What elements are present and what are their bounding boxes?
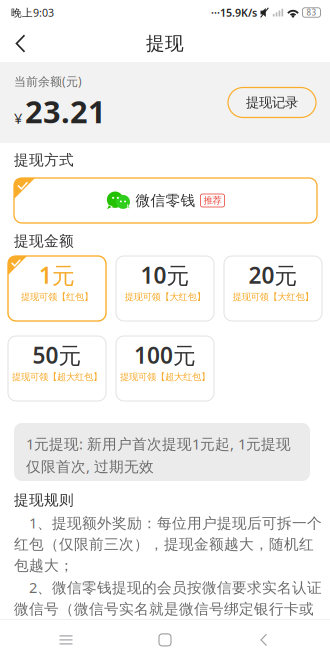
staticText: 微信零钱	[135, 191, 195, 209]
staticText: 推荐	[203, 195, 221, 206]
staticText: 提现金额	[14, 232, 74, 250]
button[interactable]: 1元	[8, 256, 106, 321]
staticText: 50元	[32, 340, 81, 370]
staticText: 1、提现额外奖励：每位用户提现后可拆一个红包（仅限前三次），提现金额越大，随机红…	[14, 513, 322, 574]
staticText: 1元提现: 新用户首次提现1元起, 1元提现仅限首次, 过期无效	[26, 434, 291, 476]
staticText: 10元	[140, 260, 189, 290]
staticText: 晚上9:03	[11, 5, 54, 20]
staticText: 提现方式	[14, 151, 74, 169]
button[interactable]: Home	[132, 620, 198, 660]
button[interactable]: Recent apps	[33, 620, 99, 660]
staticText: 提现可领【大红包】	[232, 291, 313, 303]
staticText: 100元	[134, 340, 196, 370]
button[interactable]: Back	[231, 620, 297, 660]
staticText: 提现可领【大红包】	[124, 291, 205, 303]
button[interactable]: Back	[0, 25, 42, 62]
staticText: 20元	[248, 260, 297, 290]
button[interactable]: 20元	[224, 256, 322, 321]
button[interactable]: 10元	[116, 256, 214, 321]
staticText: ¥	[14, 108, 22, 128]
button[interactable]: 50元	[8, 336, 106, 401]
staticText: 23.21	[25, 91, 106, 132]
staticText: ···15.9K/s	[211, 5, 257, 20]
staticText: 提现可领【超大红包】	[120, 371, 210, 383]
staticText: 提现	[146, 32, 184, 55]
staticText: 提现规则	[14, 491, 74, 509]
staticText: 当前余额(元)	[14, 73, 82, 89]
button[interactable]: 100元	[116, 336, 214, 401]
button[interactable]: 提现记录	[228, 87, 316, 117]
staticText: 提现记录	[246, 94, 298, 111]
button[interactable]: 微信零钱	[14, 178, 317, 223]
staticText: 1元	[39, 260, 75, 290]
staticText: 2、微信零钱提现的会员按微信要求实名认证微信号（微信号实名就是微信号绑定银行卡或…	[14, 577, 322, 639]
staticText: 83	[306, 7, 316, 18]
staticText: 提现可领【红包】	[21, 291, 93, 303]
staticText: 提现可领【超大红包】	[12, 371, 102, 383]
